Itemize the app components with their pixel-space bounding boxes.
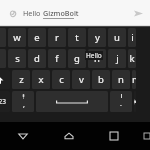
button[interactable]: d [28, 49, 46, 68]
button[interactable]: n [112, 70, 130, 89]
button[interactable]: Hello [23, 8, 79, 18]
button[interactable]: b [92, 70, 110, 89]
staticText: n [118, 73, 124, 86]
button[interactable]: j [108, 49, 126, 68]
staticText: d [34, 52, 40, 65]
button[interactable]: Send [130, 5, 146, 21]
staticText: b [98, 73, 104, 86]
button[interactable]: Enter [134, 91, 136, 112]
button[interactable]: r [48, 28, 66, 47]
staticText: . [120, 99, 122, 109]
staticText: u [114, 31, 120, 44]
button[interactable]: s [8, 49, 26, 68]
staticText: w [13, 31, 21, 44]
staticText: Hello [86, 51, 102, 60]
staticText: h [94, 52, 100, 65]
button[interactable]: Home [46, 122, 91, 150]
button[interactable]: z [12, 70, 30, 89]
staticText: r [55, 31, 59, 44]
staticText: m [132, 73, 136, 86]
staticText: t [75, 31, 79, 44]
button[interactable]: Back [0, 122, 46, 150]
staticText: x [38, 73, 44, 86]
staticText: , [23, 100, 25, 110]
button[interactable]: k [128, 49, 136, 68]
button[interactable]: g [68, 49, 86, 68]
button[interactable]: Space [36, 91, 108, 112]
staticText: z [19, 73, 24, 86]
staticText: e [34, 31, 40, 44]
button[interactable]: u [108, 28, 126, 47]
button[interactable]: Recent apps [91, 122, 136, 150]
button[interactable]: c [52, 70, 70, 89]
button[interactable]: Shift [0, 70, 10, 89]
button[interactable]: e [28, 28, 46, 47]
button[interactable]: Period [110, 91, 132, 112]
staticText: v [79, 73, 84, 86]
staticText: Hello [23, 8, 43, 18]
button[interactable]: t [68, 28, 86, 47]
staticText: k [129, 52, 135, 65]
button[interactable]: Attach [3, 4, 21, 22]
button[interactable]: Voice input [12, 91, 34, 112]
button[interactable]: w [8, 28, 26, 47]
staticText: g [74, 52, 80, 65]
button[interactable]: m [132, 70, 136, 89]
staticText: c [59, 73, 64, 86]
button[interactable]: h [88, 49, 106, 68]
button[interactable]: Menu [136, 122, 150, 150]
staticText: f [55, 52, 59, 65]
staticText: i [131, 31, 134, 44]
staticText: y [95, 31, 100, 44]
staticText: GizmoBolt [43, 8, 79, 18]
staticText: s [15, 52, 20, 65]
button[interactable]: v [72, 70, 90, 89]
staticText: j [116, 52, 119, 65]
button[interactable]: y [88, 28, 106, 47]
staticText: ?123 [0, 97, 6, 106]
button[interactable]: ?123 [0, 91, 10, 112]
button[interactable]: i [128, 28, 136, 47]
button[interactable]: x [32, 70, 50, 89]
button[interactable]: f [48, 49, 66, 68]
